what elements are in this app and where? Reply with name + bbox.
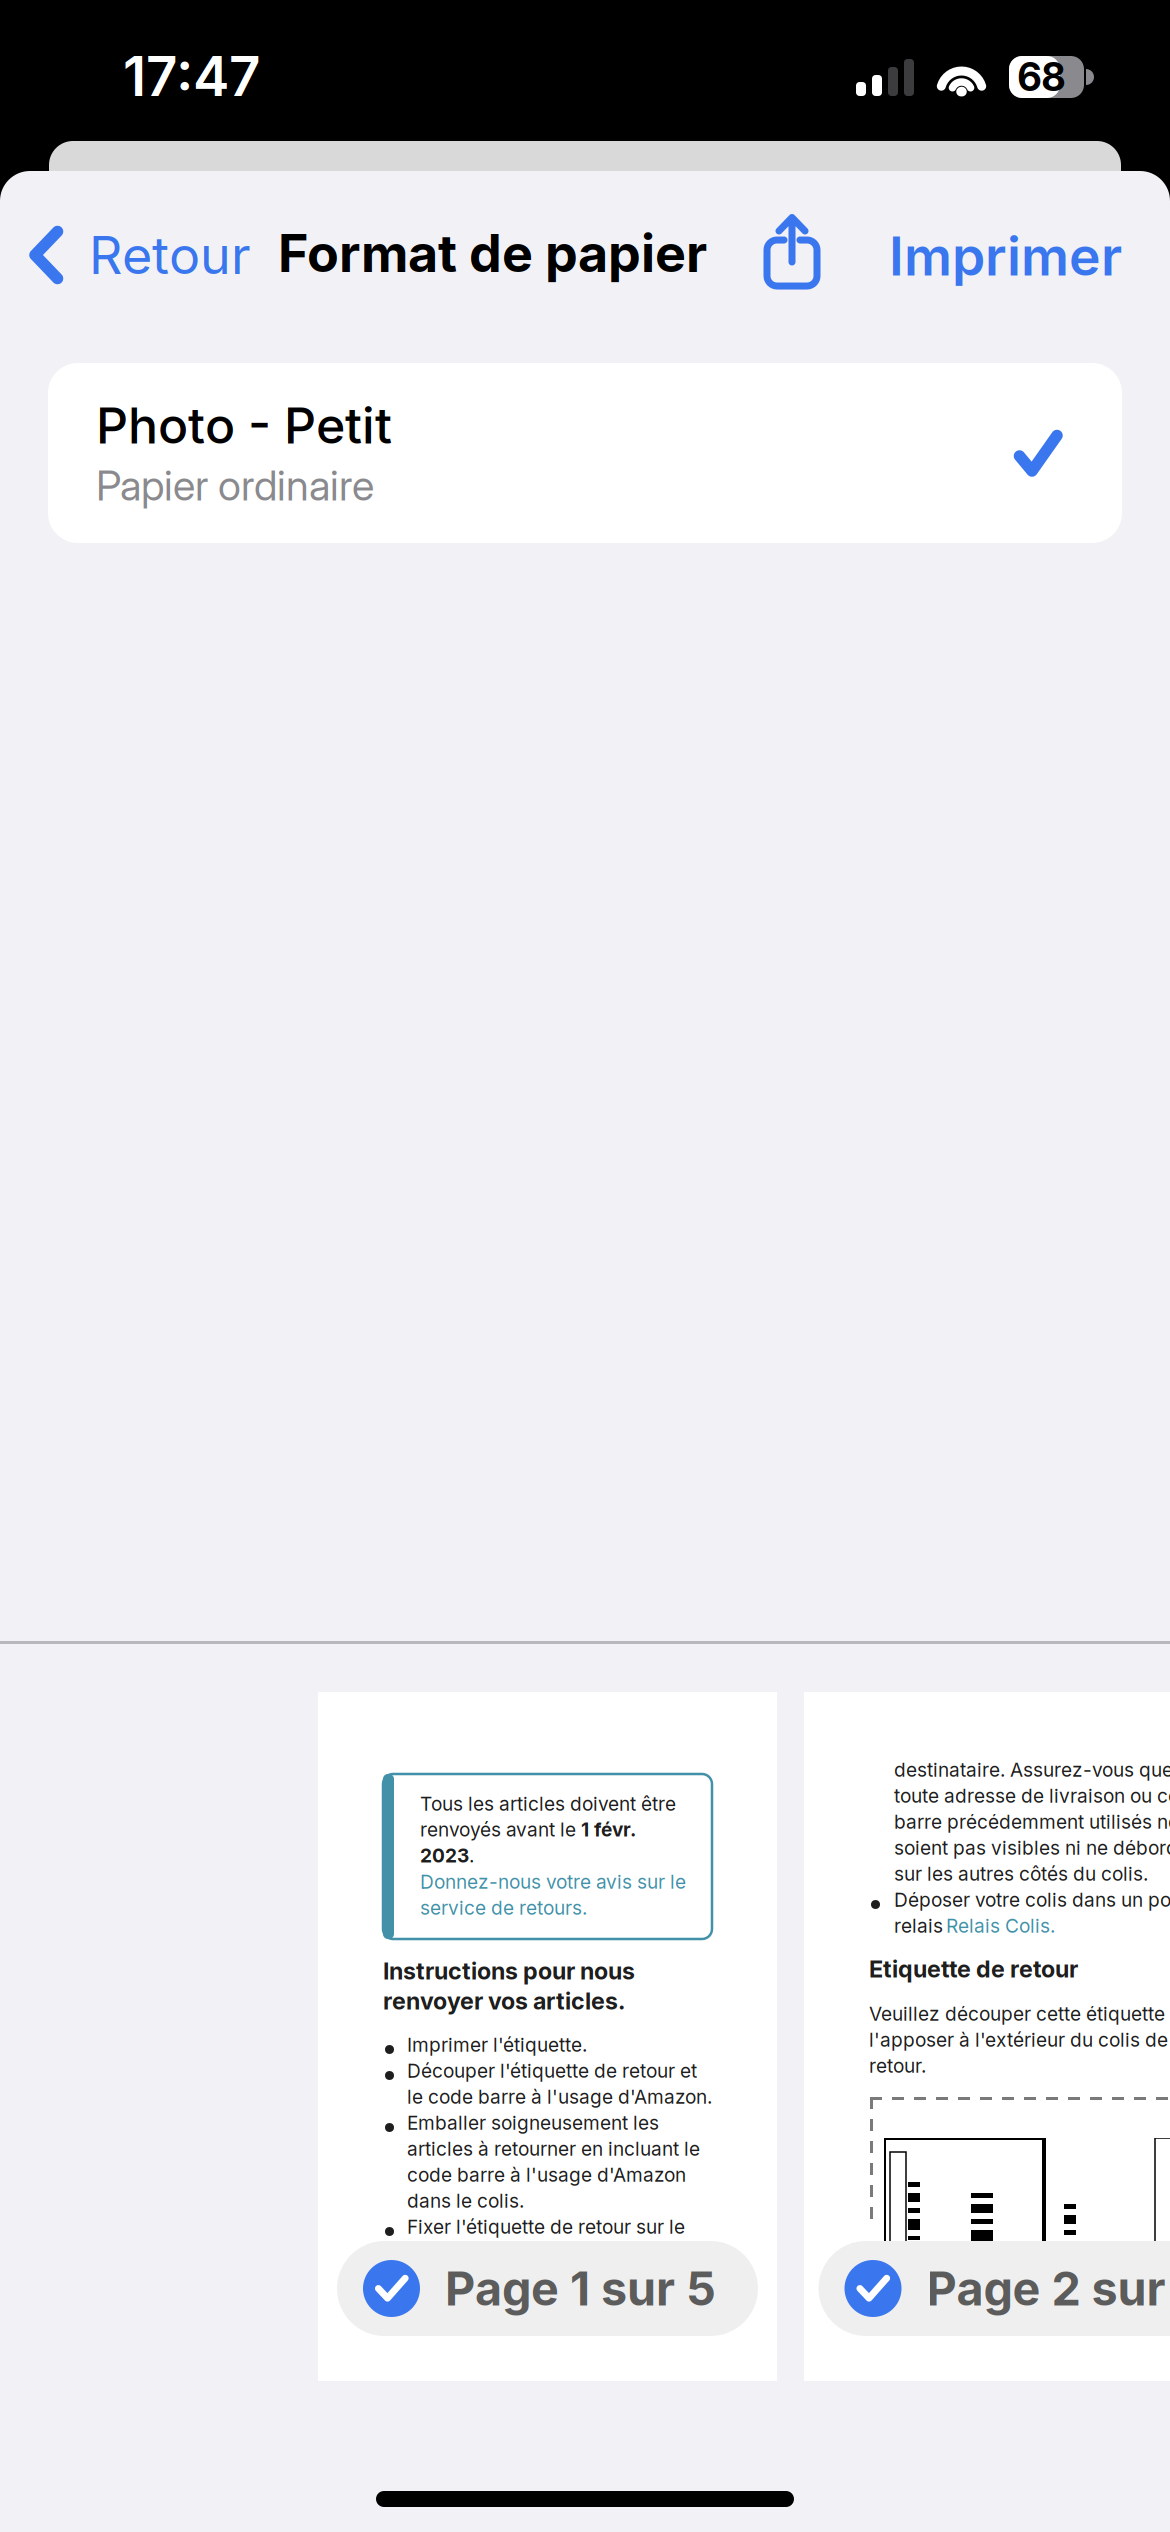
button[interactable]: Photo - Petit [48,363,1122,543]
button[interactable]: Retour [29,217,254,293]
staticText: Etiquette de retour [869,1955,1078,1983]
staticText: Veuillez découper cette étiquette e [869,2002,1170,2025]
staticText: Tous les articles doivent être [420,1792,676,1815]
staticText: sur les autres côtés du colis. [894,1862,1148,1885]
staticText: le code barre à l'usage d'Amazon. [407,2085,712,2108]
staticText: Découper l'étiquette de retour et [407,2059,697,2082]
staticText: Relais Colis. [946,1914,1055,1937]
staticText: dans le colis. [407,2189,524,2212]
staticText: articles à retourner en incluant le [407,2137,700,2160]
staticText: 2023. [420,1844,474,1867]
button[interactable]: destinataire. Assurez-vous que [804,1692,1170,2381]
staticText: Déposer votre colis dans un poin [894,1888,1170,1911]
staticText: Page 1 sur 5 [445,2260,716,2317]
staticText: renvoyés avant le 1 févr. [420,1818,636,1841]
staticText: 17:47 [123,43,260,109]
staticText: retour. [869,2054,926,2077]
button[interactable]: Tous les articles doivent être [318,1692,777,2381]
staticText: Emballer soigneusement les [407,2111,659,2134]
staticText: destinataire. Assurez-vous que [894,1758,1170,1781]
staticText: Instructions pour nous [383,1957,635,1985]
staticText: Papier ordinaire [96,460,374,510]
staticText: Photo - Petit [96,395,392,455]
staticText: Imprimer [889,224,1122,288]
staticText: Fixer l'étiquette de retour sur le [407,2215,685,2238]
button[interactable]: Partager [734,204,850,300]
staticText: toute adresse de livraison ou co [894,1784,1170,1807]
staticText: renvoyer vos articles. [383,1987,625,2015]
button[interactable]: Imprimer [860,218,1122,294]
staticText: Donnez-nous votre avis sur le [420,1870,686,1893]
staticText: Page 2 sur 5 [926,2260,1170,2317]
staticText: barre précédemment utilisés ne [894,1810,1170,1833]
staticText: code barre à l'usage d'Amazon [407,2163,686,2186]
staticText: Retour [89,223,251,286]
staticText: Format de papier [278,221,707,284]
staticText: l'apposer à l'extérieur du colis de [869,2028,1168,2051]
staticText: Imprimer l'étiquette. [407,2033,587,2056]
staticText: service de retours. [420,1896,587,1919]
staticText: 68 [1017,54,1065,100]
staticText: soient pas visibles ni ne déborde [894,1836,1170,1859]
staticText: relais [894,1914,948,1937]
